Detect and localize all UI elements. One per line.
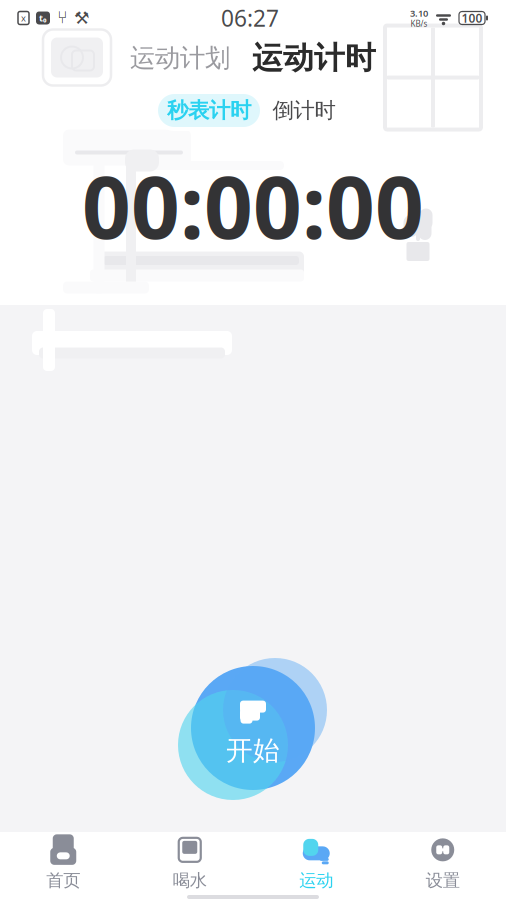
staticText: 喝水 — [173, 870, 207, 891]
button[interactable]: 运动计时 — [252, 39, 376, 77]
staticText: ⑂ — [57, 9, 67, 26]
staticText: t₀ — [39, 12, 47, 24]
staticText: 开始 — [226, 734, 280, 767]
staticText: 100 — [461, 10, 482, 26]
staticText: x — [21, 12, 26, 24]
button[interactable]: 喝水 — [126, 827, 253, 899]
staticText: ⚒ — [74, 8, 90, 28]
staticText: 设置 — [426, 870, 460, 891]
staticText: 06:27 — [221, 3, 279, 33]
staticText: KB/s — [410, 18, 427, 29]
staticText: 运动计划 — [130, 42, 230, 73]
staticText: 运动 — [299, 870, 333, 891]
staticText: 运动计时 — [252, 39, 376, 77]
staticText: 3.10 — [410, 7, 428, 19]
button[interactable]: 设置 — [379, 827, 506, 899]
staticText: 秒表计时 — [167, 97, 251, 124]
button[interactable]: 秒表计时 — [158, 94, 260, 127]
staticText: 倒计时 — [272, 97, 335, 124]
button[interactable]: 运动计划 — [130, 42, 230, 73]
staticText: 首页 — [46, 870, 80, 891]
button[interactable]: 运动 — [253, 827, 379, 899]
button[interactable]: 首页 — [0, 827, 126, 899]
button[interactable]: 开始 — [183, 666, 323, 790]
button[interactable]: 倒计时 — [260, 94, 348, 127]
staticText: 00:00:00 — [82, 149, 424, 262]
